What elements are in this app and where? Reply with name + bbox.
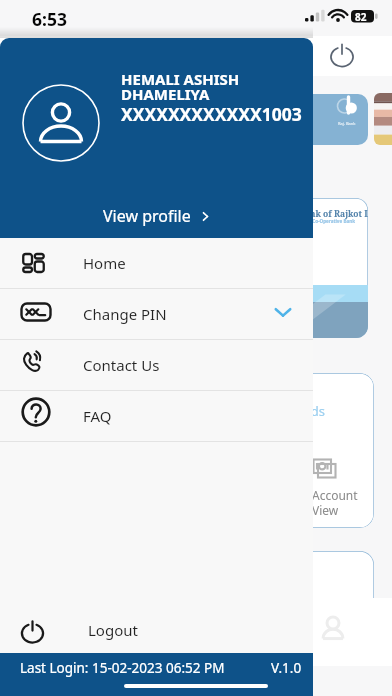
button[interactable]: Logout xyxy=(0,599,313,653)
staticText: Account View xyxy=(312,487,358,518)
staticText: Funds xyxy=(288,402,326,420)
staticText: 6:53 xyxy=(32,7,67,31)
button[interactable]: Change PIN xyxy=(0,289,313,339)
staticText: Home xyxy=(83,253,126,273)
button[interactable]: Logout power xyxy=(330,43,354,67)
staticText: XXXXXXXXXXXX1003 xyxy=(121,102,302,126)
staticText: HEMALI ASHISH DHAMELIYA xyxy=(121,69,240,104)
staticText: 82 xyxy=(355,10,367,24)
staticText: FAQ xyxy=(83,406,112,426)
staticText: Change PIN xyxy=(83,304,167,324)
staticText: Bank of Rajkot Ltd. xyxy=(299,208,368,220)
button[interactable]: Contact Us xyxy=(0,340,313,390)
staticText: Raj. Bank xyxy=(338,121,356,126)
button[interactable]: Home xyxy=(0,238,313,288)
staticText: V.1.0 xyxy=(271,659,302,677)
staticText: Logout xyxy=(88,620,138,640)
staticText: View profile xyxy=(103,205,191,227)
button[interactable]: Profile xyxy=(318,614,348,644)
staticText: State Co-Operative Bank xyxy=(299,218,356,224)
staticText: Contact Us xyxy=(83,355,160,375)
button[interactable]: FAQ xyxy=(0,391,313,441)
staticText: Last Login: 15-02-2023 06:52 PM xyxy=(20,659,225,677)
button[interactable]: View profile xyxy=(103,205,211,227)
